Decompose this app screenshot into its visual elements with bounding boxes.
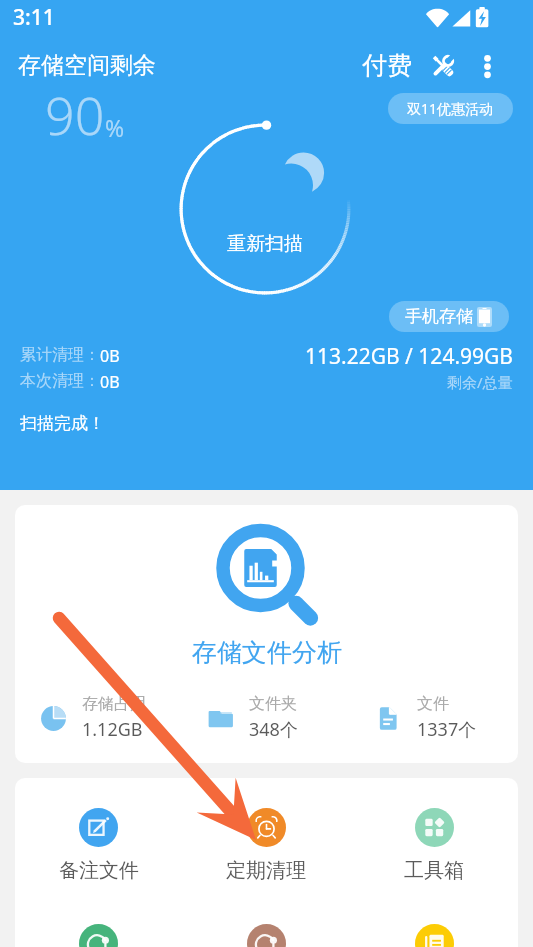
button[interactable]: 双11优惠活动: [388, 93, 513, 124]
staticText: 1.12GB: [82, 717, 143, 742]
staticText: 重新扫描: [227, 232, 303, 256]
staticText: 1337个: [417, 717, 477, 742]
staticText: 工具箱: [404, 858, 464, 883]
button[interactable]: 新建文件: [15, 924, 182, 947]
button[interactable]: 付费: [358, 42, 416, 89]
staticText: 存储空间剩余: [18, 51, 156, 80]
button[interactable]: 存储文件分析: [15, 505, 518, 763]
staticText: 存储占用: [82, 694, 146, 714]
staticText: 0B: [100, 371, 120, 393]
staticText: 扫描完成！: [20, 413, 105, 434]
staticText: 90: [45, 79, 105, 150]
staticText: 存储文件分析: [192, 637, 342, 668]
staticText: 累计清理：: [20, 345, 100, 365]
button[interactable]: 备注文件: [15, 808, 182, 883]
staticText: 本次清理：: [20, 371, 100, 391]
staticText: 剩余/总量: [447, 372, 513, 392]
staticText: 备注文件: [59, 858, 139, 883]
button[interactable]: More options: [467, 46, 507, 86]
staticText: 113.22GB / 124.99GB: [305, 342, 513, 371]
staticText: 文件: [417, 694, 449, 714]
staticText: 手机存储: [405, 306, 473, 327]
staticText: 3:11: [13, 3, 55, 32]
staticText: 348个: [249, 717, 298, 742]
button[interactable]: 工具箱: [350, 808, 518, 883]
button[interactable]: 手机存储: [389, 301, 509, 332]
staticText: %: [105, 112, 125, 143]
staticText: 双11优惠活动: [407, 99, 494, 118]
staticText: 文件夹: [249, 694, 297, 714]
button[interactable]: 定期清理: [182, 808, 350, 883]
button[interactable]: 旧文件: [182, 924, 350, 947]
button[interactable]: 文档管理: [350, 924, 518, 947]
staticText: 定期清理: [226, 858, 306, 883]
button[interactable]: Tools: [421, 44, 465, 88]
button[interactable]: 重新扫描: [178, 122, 352, 296]
staticText: 0B: [100, 345, 120, 367]
staticText: 付费: [362, 50, 412, 81]
